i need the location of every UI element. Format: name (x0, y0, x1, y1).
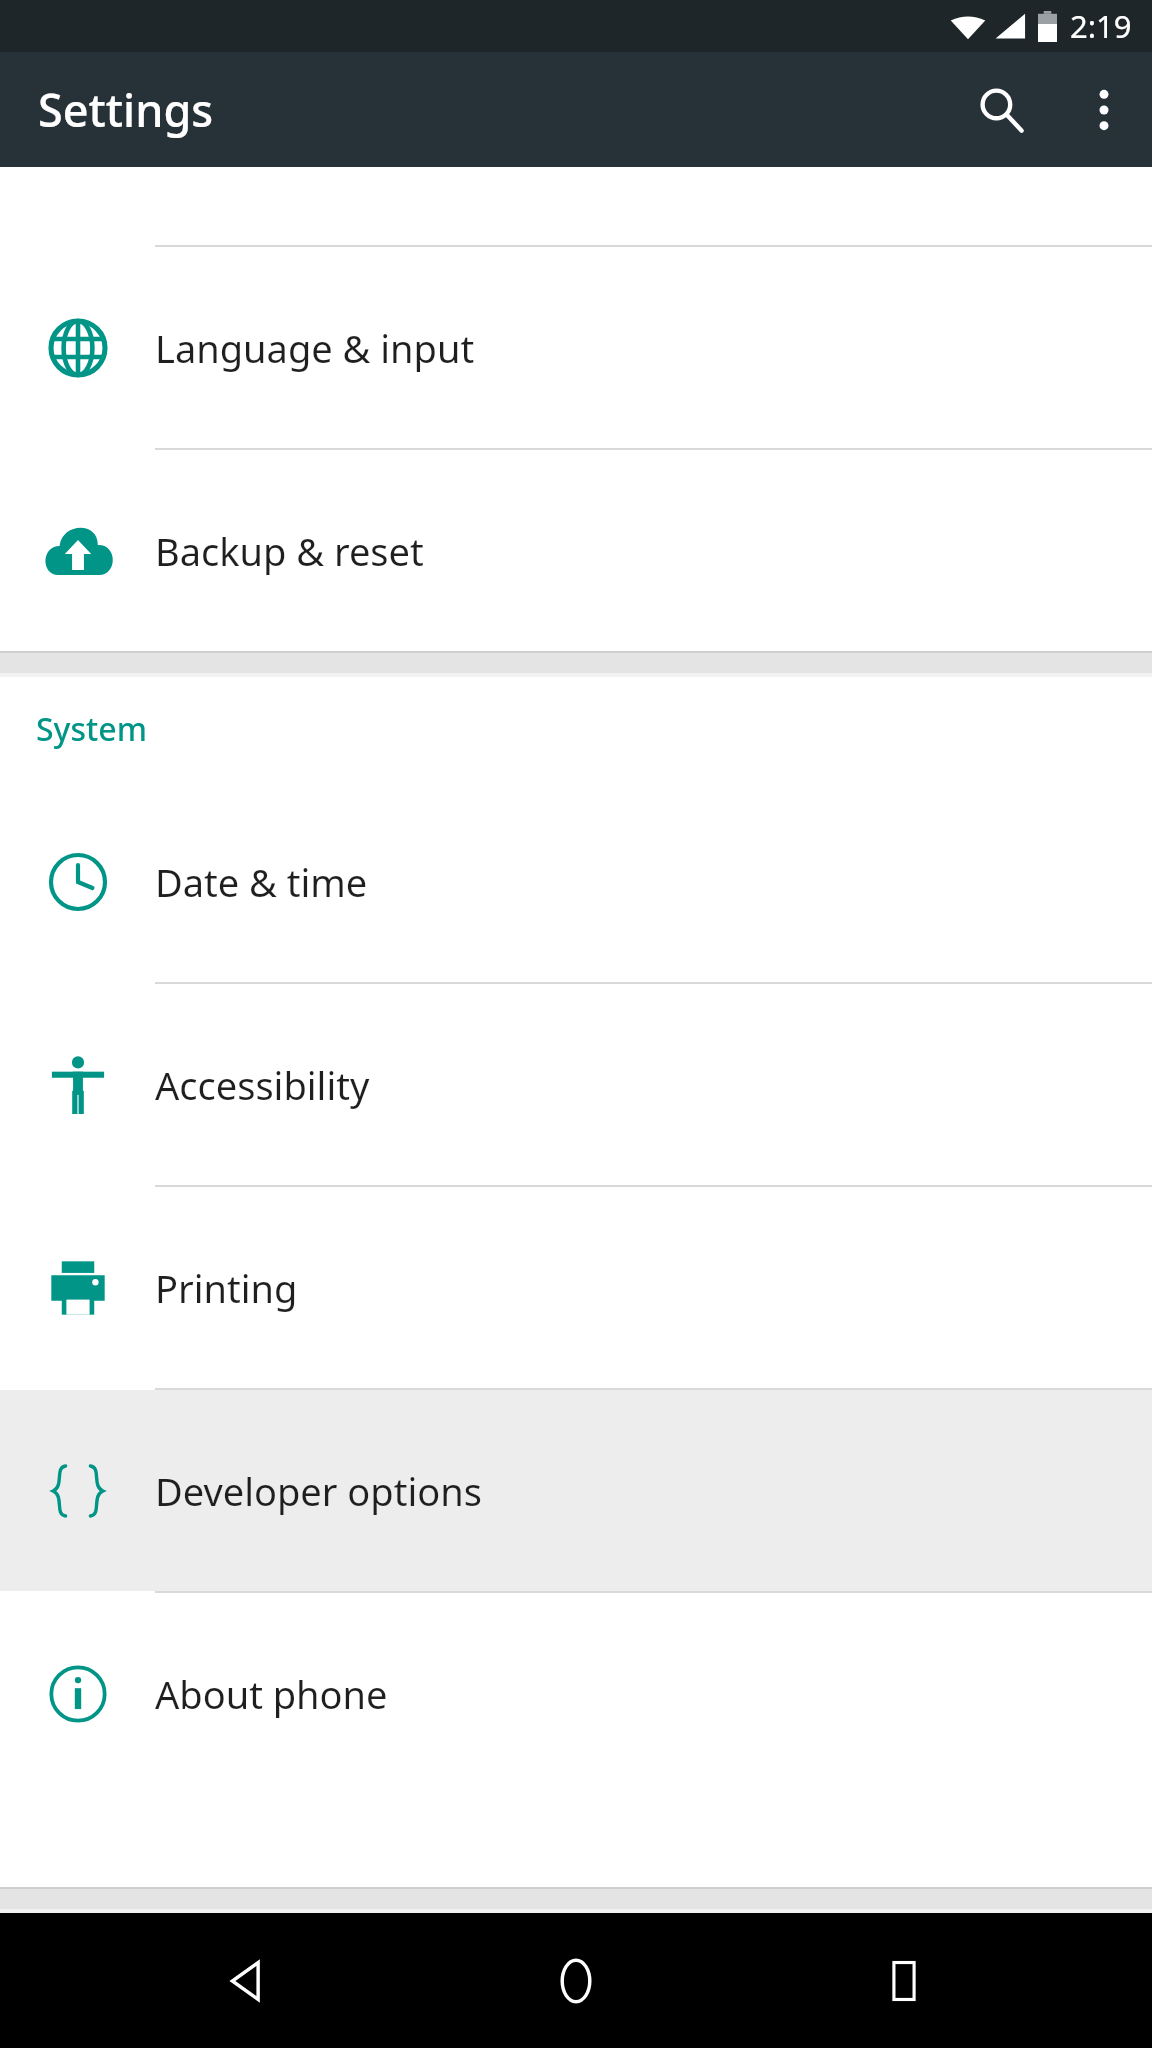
staticText: Backup & reset (155, 525, 424, 577)
button[interactable]: Back (168, 1913, 328, 2048)
staticText: Date & time (155, 856, 368, 908)
button[interactable]: Date & time (0, 781, 1152, 982)
button[interactable]: Home (496, 1913, 656, 2048)
button[interactable]: Accessibility (0, 984, 1152, 1185)
button[interactable]: Backup & reset (0, 450, 1152, 651)
staticText: Developer options (155, 1465, 482, 1517)
button[interactable]: Developer options (0, 1390, 1152, 1591)
button[interactable]: Printing (0, 1187, 1152, 1388)
button[interactable]: Language & input (0, 247, 1152, 448)
button[interactable]: More options (1056, 52, 1152, 167)
button[interactable]: Search (946, 52, 1056, 167)
staticText: System (36, 707, 147, 751)
staticText: Printing (155, 1262, 298, 1314)
button[interactable]: About phone (0, 1593, 1152, 1794)
staticText: Accessibility (155, 1059, 370, 1111)
staticText: Settings (38, 79, 214, 140)
staticText: About phone (155, 1668, 388, 1720)
button[interactable]: Recents (824, 1913, 984, 2048)
staticText: Language & input (155, 322, 475, 374)
staticText: 2:19 (1070, 5, 1132, 47)
